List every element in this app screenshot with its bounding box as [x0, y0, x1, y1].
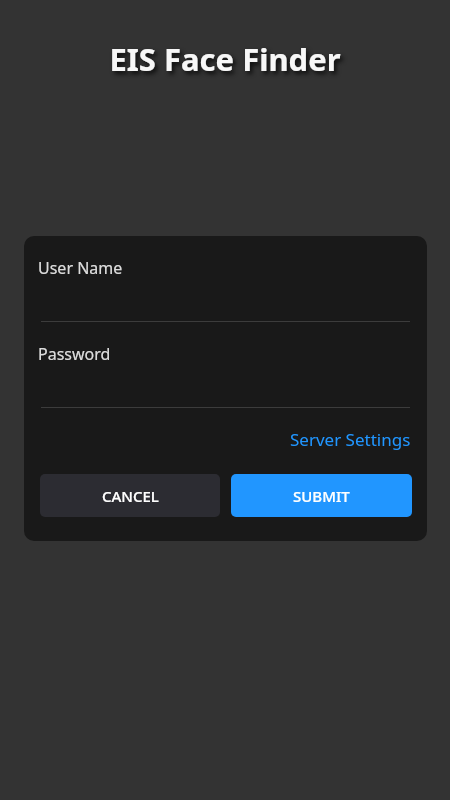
staticText: EIS Face Finder	[0, 38, 450, 80]
staticText: User Name	[38, 257, 123, 279]
button[interactable]: User Name	[24, 236, 427, 322]
button[interactable]: SUBMIT	[231, 474, 412, 517]
staticText: CANCEL	[102, 486, 159, 506]
staticText: Password	[38, 343, 111, 365]
button[interactable]: CANCEL	[40, 474, 220, 517]
button[interactable]: Password	[24, 322, 427, 408]
button[interactable]: Server Settings	[286, 424, 415, 455]
staticText: SUBMIT	[293, 486, 350, 506]
staticText: Server Settings	[290, 428, 411, 451]
